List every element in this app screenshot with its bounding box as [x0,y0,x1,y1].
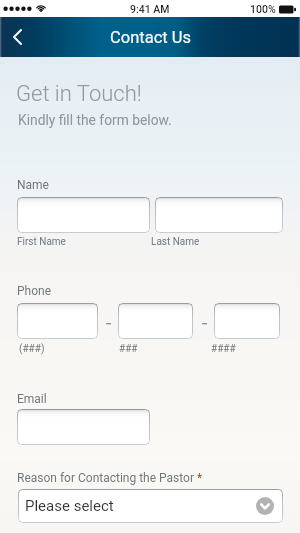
staticText: Last Name [151,236,200,248]
staticText: * [197,471,203,485]
staticText: Kindly fill the form below. [18,112,172,128]
staticText: ### [119,343,138,355]
button[interactable] [214,303,280,339]
staticText: #### [211,343,236,355]
button[interactable] [17,303,98,339]
staticText: (###) [19,343,45,355]
button[interactable]: Please select [18,489,283,523]
staticText: Phone [17,284,52,298]
staticText: Get in Touch! [16,81,142,107]
staticText: Reason for Contacting the Pastor [17,471,197,485]
staticText: Please select [25,497,114,515]
staticText: First Name [17,236,66,248]
staticText: 9:41 AM [130,3,170,15]
staticText: Name [17,178,49,192]
button[interactable] [155,197,283,233]
staticText: Email [17,392,47,406]
button[interactable] [17,409,150,445]
button[interactable] [118,303,193,339]
staticText: 100% [250,3,276,15]
staticText: Contact Us [110,28,191,47]
button[interactable]: Back [0,17,36,57]
button[interactable] [17,197,150,233]
